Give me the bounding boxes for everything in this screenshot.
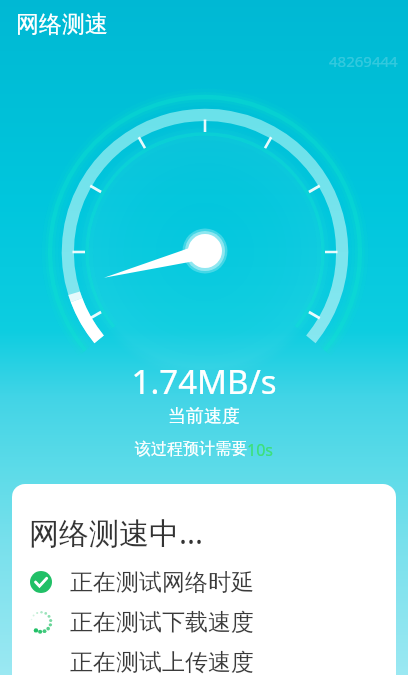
staticText: 网络测速中...	[29, 512, 204, 553]
staticText: 网络测速	[16, 10, 108, 39]
staticText: 当前速度	[0, 405, 408, 428]
staticText: 正在测试网络时延	[70, 568, 254, 597]
button[interactable]: 正在测试网络时延	[12, 562, 396, 602]
staticText: 10s	[247, 439, 273, 461]
staticText: 该过程预计需要	[135, 439, 247, 459]
button[interactable]: 正在测试下载速度	[12, 602, 396, 642]
staticText: 1.74MB/s	[0, 359, 408, 404]
staticText: 正在测试上传速度	[70, 648, 254, 675]
staticText: 48269444	[329, 51, 398, 71]
button[interactable]: 网络测速	[16, 4, 108, 44]
staticText: 正在测试下载速度	[70, 608, 254, 637]
button[interactable]: 正在测试上传速度	[12, 642, 396, 675]
